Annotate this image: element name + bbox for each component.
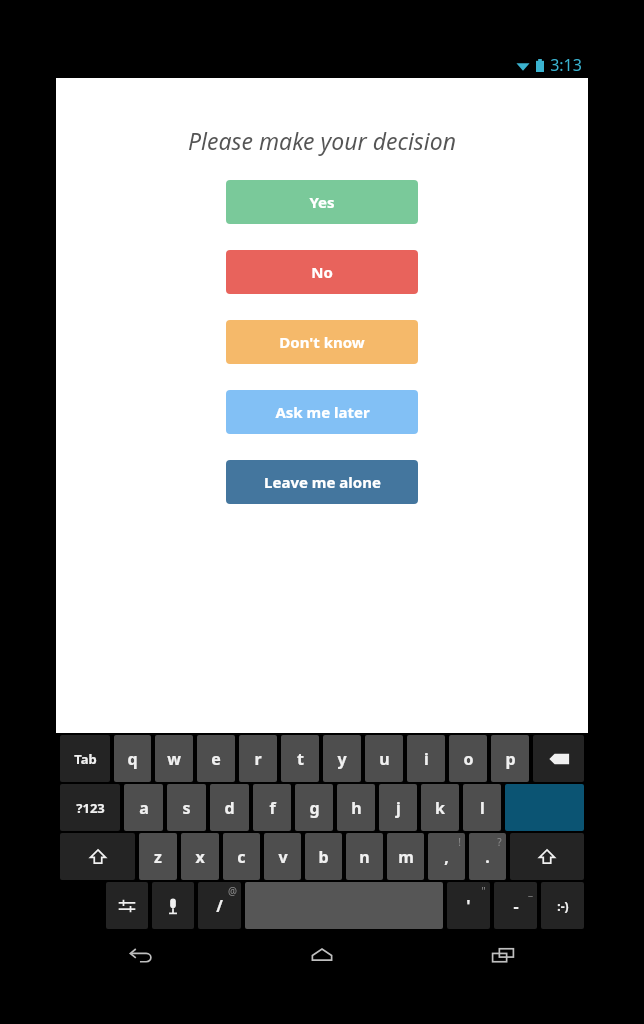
staticText: i: [424, 748, 429, 770]
button[interactable]: m: [387, 833, 424, 880]
staticText: ?: [497, 835, 502, 849]
button[interactable]: Voice input: [152, 882, 194, 929]
staticText: Ask me later: [275, 402, 370, 422]
button[interactable]: k: [421, 784, 459, 831]
staticText: b: [318, 846, 329, 868]
button[interactable]: Don't know: [226, 320, 418, 364]
button[interactable]: Shift: [60, 833, 135, 880]
staticText: ': [466, 895, 471, 917]
button[interactable]: z: [139, 833, 177, 880]
staticText: r: [254, 748, 262, 770]
button[interactable]: h: [337, 784, 375, 831]
staticText: g: [309, 797, 320, 819]
staticText: u: [379, 748, 390, 770]
button[interactable]: Shift: [510, 833, 584, 880]
staticText: Yes: [309, 192, 335, 212]
staticText: h: [351, 797, 362, 819]
staticText: 3:13: [550, 54, 582, 76]
button[interactable]: t: [281, 735, 319, 782]
staticText: Leave me alone: [264, 472, 381, 492]
staticText: o: [463, 748, 474, 770]
staticText: e: [211, 748, 221, 770]
staticText: x: [195, 846, 205, 868]
button[interactable]: Yes: [226, 180, 418, 224]
button[interactable]: p: [491, 735, 529, 782]
button[interactable]: s: [167, 784, 206, 831]
button[interactable]: Recent apps: [463, 932, 543, 978]
staticText: k: [435, 797, 445, 819]
staticText: s: [182, 797, 191, 819]
button[interactable]: ?123: [60, 784, 120, 831]
staticText: d: [224, 797, 235, 819]
button[interactable]: f: [253, 784, 291, 831]
button[interactable]: b: [305, 833, 342, 880]
button[interactable]: Ask me later: [226, 390, 418, 434]
button[interactable]: g: [295, 784, 333, 831]
button[interactable]: l: [463, 784, 501, 831]
staticText: -: [513, 895, 519, 917]
button[interactable]: ': [447, 882, 490, 929]
staticText: q: [127, 748, 138, 770]
staticText: .: [485, 846, 490, 868]
button[interactable]: Tab: [60, 735, 110, 782]
button[interactable]: -: [494, 882, 537, 929]
button[interactable]: o: [449, 735, 487, 782]
staticText: /: [216, 895, 223, 917]
staticText: Don't know: [279, 332, 365, 352]
staticText: a: [139, 797, 149, 819]
button[interactable]: a: [124, 784, 163, 831]
button[interactable]: .: [469, 833, 506, 880]
button[interactable]: u: [365, 735, 403, 782]
button[interactable]: j: [379, 784, 417, 831]
staticText: _: [528, 884, 533, 898]
staticText: Please make your decision: [188, 125, 456, 156]
staticText: c: [237, 846, 246, 868]
button[interactable]: r: [239, 735, 277, 782]
button[interactable]: q: [114, 735, 151, 782]
staticText: ": [481, 884, 486, 898]
staticText: ?123: [76, 799, 105, 817]
button[interactable]: w: [155, 735, 193, 782]
staticText: ,: [444, 846, 449, 868]
button[interactable]: x: [181, 833, 219, 880]
button[interactable]: Home: [282, 932, 362, 978]
staticText: v: [278, 846, 288, 868]
button[interactable]: i: [407, 735, 445, 782]
button[interactable]: Keyboard settings: [106, 882, 148, 929]
button[interactable]: Backspace: [533, 735, 584, 782]
button[interactable]: e: [197, 735, 235, 782]
button[interactable]: v: [264, 833, 301, 880]
staticText: z: [154, 846, 162, 868]
button[interactable]: ,: [428, 833, 465, 880]
button[interactable]: n: [346, 833, 383, 880]
staticText: w: [167, 748, 181, 770]
staticText: @: [228, 884, 237, 898]
staticText: !: [458, 835, 461, 849]
button[interactable]: :-): [541, 882, 584, 929]
staticText: f: [269, 797, 276, 819]
button[interactable]: d: [210, 784, 249, 831]
staticText: j: [396, 797, 401, 819]
staticText: :-): [557, 898, 569, 914]
button[interactable]: /: [198, 882, 241, 929]
button[interactable]: No: [226, 250, 418, 294]
staticText: n: [359, 846, 370, 868]
staticText: t: [297, 748, 304, 770]
button[interactable]: y: [323, 735, 361, 782]
staticText: m: [398, 846, 414, 868]
staticText: No: [311, 262, 333, 282]
staticText: l: [480, 797, 485, 819]
staticText: p: [505, 748, 516, 770]
button[interactable]: Back: [101, 932, 181, 978]
button[interactable]: c: [223, 833, 260, 880]
staticText: y: [337, 748, 347, 770]
staticText: Tab: [74, 750, 97, 768]
button[interactable]: Leave me alone: [226, 460, 418, 504]
